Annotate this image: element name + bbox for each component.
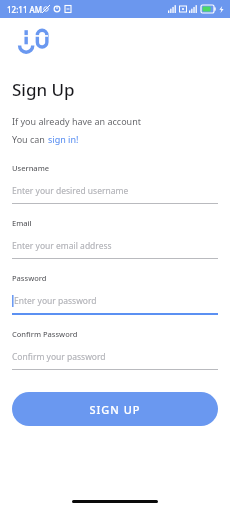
staticText: Password <box>12 273 47 283</box>
staticText: 12:11 AM <box>7 4 43 15</box>
button[interactable]: sign in! <box>48 133 79 145</box>
button[interactable]: Enter your desired username <box>12 184 218 198</box>
button[interactable]: Confirm your password <box>12 350 218 364</box>
staticText: Enter your desired username <box>12 185 129 197</box>
staticText: You can <box>12 133 48 145</box>
staticText: Confirm Password <box>12 329 78 339</box>
staticText: Enter your email address <box>12 240 112 252</box>
staticText: Email <box>12 218 32 228</box>
staticText: sign in! <box>48 133 79 145</box>
staticText: If you already have an account <box>12 115 141 127</box>
staticText: Sign Up <box>12 78 75 101</box>
staticText: Confirm your password <box>12 351 106 363</box>
button[interactable]: SIGN UP <box>12 392 218 426</box>
staticText: Username <box>12 163 50 173</box>
staticText: Enter your password <box>14 295 97 307</box>
staticText: SIGN UP <box>89 402 141 417</box>
button[interactable]: Enter your email address <box>12 239 218 253</box>
button[interactable]: Enter your password <box>12 294 218 308</box>
